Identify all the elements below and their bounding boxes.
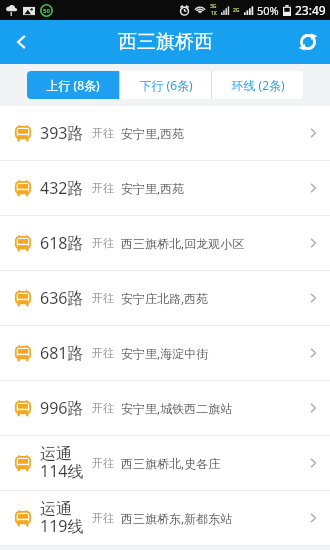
staticText: 开往 xyxy=(92,291,114,305)
staticText: 安宁里,海淀中街 xyxy=(121,345,296,361)
staticText: 3G xyxy=(210,3,217,10)
staticText: 安宁庄北路,西苑 xyxy=(121,290,296,306)
staticText: 50 xyxy=(43,7,50,15)
staticText: 23:49 xyxy=(295,2,326,18)
button[interactable]: 618路 xyxy=(0,216,330,270)
button[interactable]: 636路 xyxy=(0,271,330,325)
button[interactable]: 运通119线 xyxy=(0,491,330,545)
staticText: 681路 xyxy=(40,342,84,364)
staticText: 运通114线 xyxy=(40,444,88,482)
staticText: 运通119线 xyxy=(40,499,88,537)
staticText: 393路 xyxy=(40,122,84,144)
staticText: 开往 xyxy=(92,236,114,250)
staticText: 环线 (2条) xyxy=(231,77,285,93)
staticText: 开往 xyxy=(92,126,114,140)
staticText: 开往 xyxy=(92,181,114,195)
staticText: 2G xyxy=(233,7,240,14)
staticText: 636路 xyxy=(40,287,84,309)
staticText: 开往 xyxy=(92,511,114,525)
staticText: 安宁里,西苑 xyxy=(121,180,296,196)
button[interactable]: 上行 (8条) xyxy=(27,71,119,99)
button[interactable]: 996路 xyxy=(0,381,330,435)
staticText: 上行 (8条) xyxy=(46,77,100,93)
button[interactable]: 393路 xyxy=(0,106,330,160)
staticText: 下行 (6条) xyxy=(139,77,193,93)
staticText: 西三旗桥东,新都东站 xyxy=(121,510,296,526)
staticText: 618路 xyxy=(40,232,84,254)
button[interactable]: 下行 (6条) xyxy=(120,71,211,99)
button[interactable]: 运通114线 xyxy=(0,436,330,490)
staticText: 西三旗桥北,史各庄 xyxy=(121,455,296,471)
staticText: 432路 xyxy=(40,177,84,199)
staticText: 开往 xyxy=(92,346,114,360)
staticText: 西三旗桥西 xyxy=(118,30,213,54)
staticText: 996路 xyxy=(40,397,84,419)
button[interactable]: Refresh xyxy=(286,20,330,64)
staticText: 安宁里,西苑 xyxy=(121,125,296,141)
staticText: 1X xyxy=(211,10,217,17)
staticText: 开往 xyxy=(92,456,114,470)
staticText: 安宁里,城铁西二旗站 xyxy=(121,400,296,416)
button[interactable]: 432路 xyxy=(0,161,330,215)
button[interactable]: 环线 (2条) xyxy=(212,71,303,99)
button[interactable]: 681路 xyxy=(0,326,330,380)
button[interactable]: Back xyxy=(0,20,44,64)
staticText: 50% xyxy=(257,3,279,18)
staticText: 西三旗桥北,回龙观小区 xyxy=(121,235,296,251)
staticText: 开往 xyxy=(92,401,114,415)
